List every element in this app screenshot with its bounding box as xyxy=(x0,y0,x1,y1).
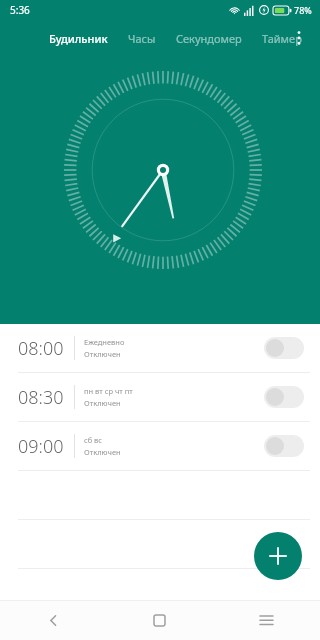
button[interactable]: Alarm toggle, off xyxy=(264,435,304,457)
staticText: 08:00 xyxy=(18,336,64,361)
staticText: пн вт ср чт пт xyxy=(84,386,133,396)
staticText: 5:36 xyxy=(10,3,30,17)
staticText: Отключен xyxy=(84,447,121,457)
button[interactable]: Alarm toggle, off xyxy=(264,337,304,359)
button[interactable]: Будильник xyxy=(47,27,110,50)
button[interactable]: Home xyxy=(106,601,213,640)
button[interactable]: Alarm toggle, off xyxy=(264,386,304,408)
button[interactable]: Таймер xyxy=(260,27,304,50)
button[interactable]: More options xyxy=(284,23,314,53)
staticText: Секундомер xyxy=(176,31,242,46)
staticText: сб вс xyxy=(84,435,103,445)
staticText: Часы xyxy=(128,31,156,46)
button[interactable]: Back xyxy=(0,601,106,640)
button[interactable]: Секундомер xyxy=(174,27,244,50)
staticText: Отключен xyxy=(84,349,121,359)
staticText: 08:30 xyxy=(18,385,64,410)
button[interactable]: 09:00 xyxy=(0,422,320,470)
staticText: Будильник xyxy=(49,31,108,46)
button[interactable]: 08:00 xyxy=(0,324,320,372)
staticText: Таймер xyxy=(262,31,302,46)
staticText: Ежедневно xyxy=(84,337,125,347)
button[interactable]: Add alarm xyxy=(254,532,302,580)
staticText: 09:00 xyxy=(18,434,64,459)
staticText: Отключен xyxy=(84,398,121,408)
staticText: 78% xyxy=(294,4,312,16)
button[interactable]: 08:30 xyxy=(0,373,320,421)
button[interactable]: Recent apps xyxy=(213,601,320,640)
button[interactable]: Часы xyxy=(126,27,158,50)
